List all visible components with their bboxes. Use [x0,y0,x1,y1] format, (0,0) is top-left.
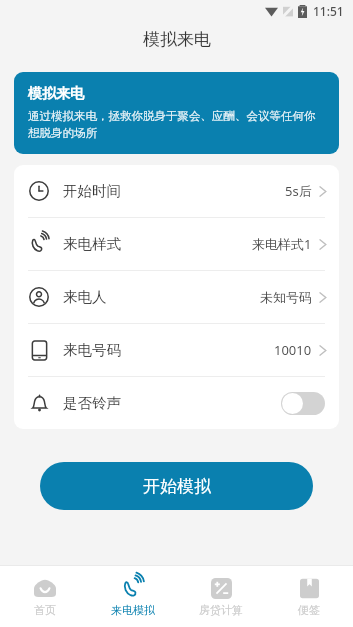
staticText: 开始时间 [63,182,121,200]
staticText: 便签 [298,603,320,617]
button[interactable]: 开始时间 [14,165,339,217]
button[interactable]: 是否铃声 [14,377,339,429]
staticText: 通过模拟来电，拯救你脱身于聚会、应酬、会议等任何你想脱身的场所 [28,109,325,140]
staticText: 来电号码 [63,341,121,359]
staticText: 首页 [34,603,56,617]
button[interactable]: 来电样式 [14,218,339,270]
button[interactable]: 开始模拟 [40,462,313,510]
staticText: 来电样式 [63,235,121,253]
button[interactable]: 模拟来电 [14,72,339,154]
staticText: 5s后 [285,182,312,200]
button[interactable]: 便签 [265,566,353,627]
staticText: 未知号码 [260,289,312,305]
button[interactable]: 来电号码 [14,324,339,376]
staticText: 房贷计算 [199,603,243,617]
button[interactable]: 来电人 [14,271,339,323]
button[interactable]: 来电模拟 [89,566,177,627]
staticText: 模拟来电 [143,29,211,50]
staticText: 来电人 [63,288,107,306]
staticText: 开始模拟 [143,476,211,497]
staticText: 来电样式1 [252,235,312,253]
button[interactable]: 首页 [0,566,89,627]
staticText: 模拟来电 [28,85,84,103]
staticText: 是否铃声 [63,394,121,412]
staticText: 来电模拟 [111,603,155,617]
staticText: 11:51 [313,3,344,19]
staticText: 10010 [274,341,312,359]
button[interactable]: 房贷计算 [177,566,265,627]
button[interactable]: Toggle ringtone [281,392,325,415]
